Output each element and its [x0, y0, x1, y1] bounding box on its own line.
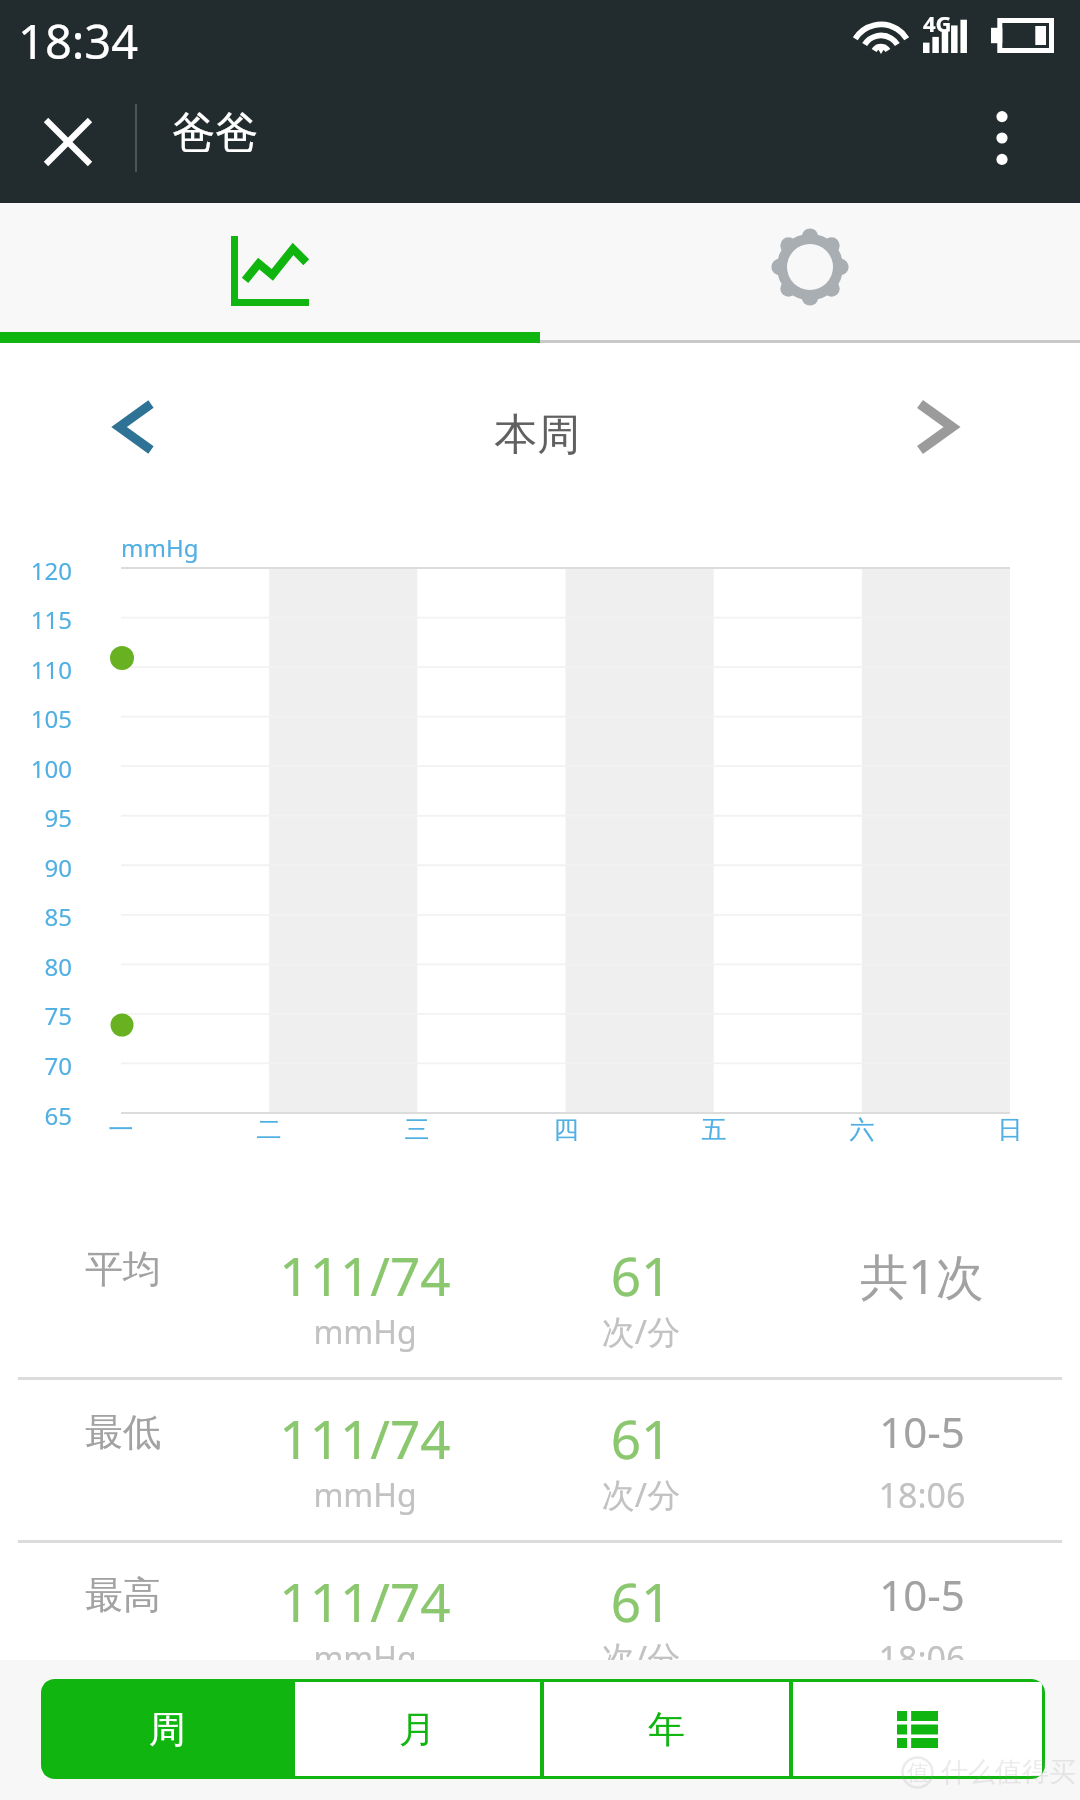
staticText: 次/分: [501, 1635, 781, 1680]
staticText: 18:06: [782, 1635, 1062, 1681]
staticText: 100: [0, 752, 72, 785]
button[interactable]: 年: [544, 1682, 789, 1776]
staticText: 115: [0, 603, 72, 636]
staticText: 10-5: [782, 1566, 1062, 1623]
staticText: 爸爸: [172, 106, 258, 160]
staticText: 18:06: [782, 1472, 1062, 1518]
staticText: 一: [91, 1114, 151, 1145]
staticText: 120: [0, 554, 72, 587]
staticText: 周: [149, 1706, 186, 1753]
staticText: 本周: [494, 408, 580, 462]
staticText: 最低: [85, 1408, 161, 1456]
staticText: 六: [832, 1114, 892, 1145]
staticText: 70: [0, 1049, 72, 1082]
staticText: 月: [399, 1706, 436, 1753]
staticText: 111/74: [225, 1239, 505, 1311]
staticText: mmHg: [121, 531, 199, 564]
staticText: 次/分: [501, 1472, 781, 1517]
staticText: 75: [0, 999, 72, 1032]
staticText: 95: [0, 801, 72, 834]
staticText: 80: [0, 950, 72, 983]
staticText: 105: [0, 702, 72, 735]
button[interactable]: More options: [956, 88, 1048, 187]
staticText: 4G: [923, 8, 952, 38]
staticText: 10-5: [782, 1403, 1062, 1460]
staticText: 85: [0, 900, 72, 933]
staticText: mmHg: [225, 1636, 505, 1680]
button[interactable]: 最高: [0, 1541, 1080, 1703]
button[interactable]: Close: [22, 92, 113, 191]
staticText: 61: [501, 1565, 781, 1637]
staticText: 61: [501, 1402, 781, 1474]
staticText: 二: [239, 1114, 299, 1145]
staticText: 五: [684, 1114, 744, 1145]
staticText: 61: [501, 1239, 781, 1311]
staticText: 最高: [85, 1571, 161, 1619]
staticText: 什么值得买: [941, 1755, 1076, 1789]
staticText: 三: [387, 1114, 447, 1145]
button[interactable]: 平均: [0, 1215, 1080, 1377]
staticText: 平均: [85, 1245, 161, 1293]
button[interactable]: Previous week: [87, 379, 183, 475]
staticText: 四: [536, 1114, 596, 1145]
button[interactable]: Chart: [0, 203, 540, 343]
staticText: 日: [980, 1114, 1040, 1145]
staticText: 年: [648, 1706, 685, 1753]
staticText: mmHg: [225, 1473, 505, 1517]
staticText: 值: [907, 1759, 929, 1787]
staticText: mmHg: [225, 1310, 505, 1354]
button[interactable]: 月: [295, 1682, 540, 1776]
button[interactable]: List view: [793, 1682, 1042, 1776]
staticText: 111/74: [225, 1402, 505, 1474]
staticText: 18:34: [18, 9, 139, 73]
button[interactable]: 最低: [0, 1378, 1080, 1540]
staticText: 65: [0, 1099, 72, 1132]
button[interactable]: Next week: [888, 379, 984, 475]
staticText: 90: [0, 851, 72, 884]
staticText: 次/分: [501, 1309, 781, 1354]
button[interactable]: 周: [44, 1682, 291, 1776]
staticText: 共1次: [782, 1243, 1062, 1309]
button[interactable]: Settings: [540, 203, 1080, 343]
staticText: 111/74: [225, 1565, 505, 1637]
staticText: 110: [0, 653, 72, 686]
